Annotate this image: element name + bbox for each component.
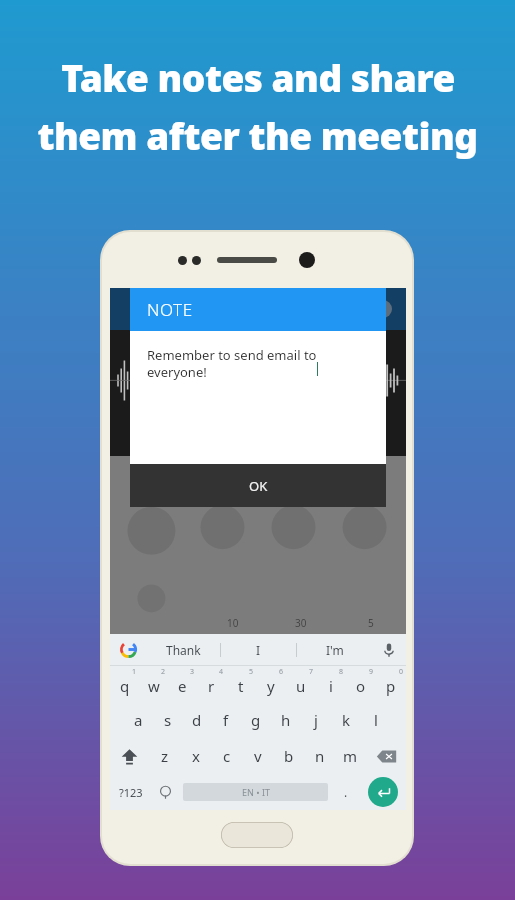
staticText: 5 (249, 667, 254, 677)
button[interactable]: x (180, 738, 211, 774)
staticText: 30 (295, 616, 307, 630)
button[interactable]: . (331, 774, 360, 810)
button[interactable]: I'm (297, 634, 372, 665)
staticText: p (386, 676, 396, 696)
staticText: Remember to send email to everyone! (147, 346, 317, 381)
staticText: y (267, 676, 275, 696)
button[interactable]: o (346, 666, 376, 702)
button[interactable]: Backspace (366, 738, 406, 774)
button[interactable]: Google (110, 634, 146, 665)
button[interactable]: h (271, 702, 301, 738)
staticText: 10 (227, 616, 239, 630)
button[interactable]: g (241, 702, 271, 738)
staticText: s (164, 710, 172, 730)
button[interactable]: n (304, 738, 335, 774)
staticText: 5 (368, 616, 374, 630)
button[interactable]: Shift (110, 738, 149, 774)
staticText: e (178, 676, 187, 696)
button[interactable]: b (273, 738, 304, 774)
button[interactable]: OK (130, 464, 386, 507)
button[interactable]: j (301, 702, 331, 738)
button[interactable]: i (316, 666, 346, 702)
button[interactable]: a (124, 702, 153, 738)
staticText: v (254, 746, 262, 766)
staticText: them after the meeting (37, 110, 478, 160)
staticText: 6 (279, 667, 284, 677)
staticText: Take notes and share (61, 52, 455, 102)
button[interactable]: f (211, 702, 241, 738)
staticText: d (192, 710, 202, 730)
button[interactable]: e (168, 666, 197, 702)
staticText: 9 (369, 667, 374, 677)
button[interactable]: m (335, 738, 366, 774)
button[interactable]: Emoji (151, 774, 180, 810)
button[interactable]: t (226, 666, 256, 702)
button[interactable]: EN • IT (183, 783, 328, 801)
button[interactable]: w (139, 666, 168, 702)
staticText: 4 (219, 667, 224, 677)
button[interactable]: z (149, 738, 180, 774)
staticText: 3 (190, 667, 195, 677)
staticText: g (251, 710, 261, 730)
staticText: t (238, 676, 244, 696)
staticText: NOTE (147, 298, 193, 321)
staticText: n (315, 746, 325, 766)
button[interactable]: s (153, 702, 182, 738)
staticText: l (374, 710, 378, 730)
button[interactable]: Enter (368, 777, 398, 807)
button[interactable]: r (197, 666, 226, 702)
button[interactable]: d (182, 702, 211, 738)
staticText: j (314, 710, 318, 730)
staticText: 1 (132, 667, 137, 677)
staticText: Thank (166, 642, 201, 658)
button[interactable]: Info (370, 296, 396, 322)
staticText: z (161, 746, 169, 766)
staticText: . (344, 784, 348, 800)
button[interactable]: I (221, 634, 296, 665)
button[interactable]: Voice input (372, 634, 406, 665)
button[interactable]: Home (221, 822, 293, 848)
button[interactable]: ?123 (110, 774, 151, 810)
staticText: 0 (399, 667, 404, 677)
button[interactable]: y (256, 666, 286, 702)
staticText: I'm (326, 642, 344, 658)
button[interactable]: Thank (146, 634, 220, 665)
staticText: I (256, 642, 261, 658)
button[interactable]: l (361, 702, 391, 738)
staticText: 2 (161, 667, 166, 677)
staticText: k (342, 710, 351, 730)
button[interactable]: v (242, 738, 273, 774)
button[interactable]: p (376, 666, 406, 702)
button[interactable]: q (110, 666, 139, 702)
staticText: OK (249, 477, 268, 495)
staticText: 7 (309, 667, 314, 677)
staticText: h (281, 710, 291, 730)
staticText: r (208, 676, 215, 696)
staticText: m (343, 746, 358, 766)
staticText: c (223, 746, 231, 766)
staticText: EN • IT (242, 786, 270, 798)
button[interactable]: u (286, 666, 316, 702)
button[interactable]: c (211, 738, 242, 774)
staticText: b (284, 746, 294, 766)
staticText: w (148, 676, 160, 696)
staticText: ?123 (119, 785, 143, 800)
staticText: a (134, 710, 143, 730)
staticText: x (192, 746, 200, 766)
staticText: q (120, 676, 130, 696)
staticText: f (223, 710, 229, 730)
button[interactable]: k (331, 702, 361, 738)
staticText: o (356, 676, 366, 696)
staticText: i (329, 676, 333, 696)
staticText: 8 (339, 667, 344, 677)
staticText: u (296, 676, 306, 696)
